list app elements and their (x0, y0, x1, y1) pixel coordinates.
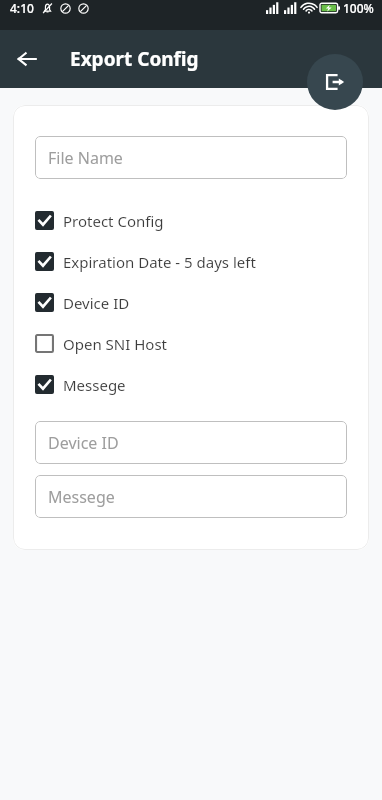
staticText: Protect Config (63, 211, 164, 231)
staticText: Export Config (70, 46, 199, 72)
button[interactable]: Messege (35, 475, 347, 518)
staticText: Device ID (48, 432, 119, 454)
staticText: Device ID (63, 293, 130, 313)
staticText: Open SNI Host (63, 334, 167, 354)
staticText: Messege (48, 486, 115, 508)
button[interactable]: Messege (35, 364, 347, 405)
button[interactable]: Open SNI Host (35, 323, 347, 364)
button[interactable]: Device ID (35, 421, 347, 464)
button[interactable]: Back (7, 39, 47, 79)
button[interactable]: Device ID (35, 282, 347, 323)
staticText: 100% (343, 0, 374, 16)
staticText: 4:10 (10, 0, 34, 16)
button[interactable]: File Name (35, 136, 347, 179)
staticText: Messege (63, 375, 126, 395)
staticText: Expiration Date - 5 days left (63, 252, 256, 272)
staticText: File Name (48, 147, 123, 169)
button[interactable]: Protect Config (35, 200, 347, 241)
button[interactable]: Export (307, 54, 363, 110)
button[interactable]: Expiration Date - 5 days left (35, 241, 347, 282)
